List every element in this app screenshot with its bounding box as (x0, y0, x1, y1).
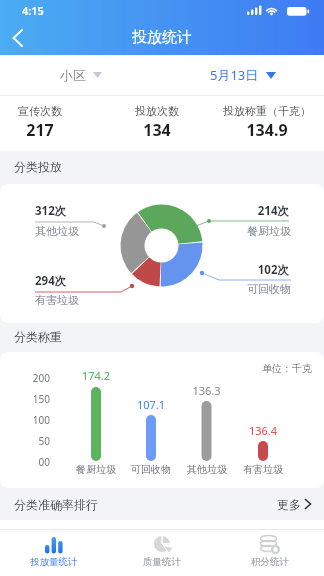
staticText: 投放称重（千克） (210, 104, 324, 118)
staticText: 投放量统计 (30, 556, 78, 568)
staticText: 投放统计 (0, 28, 324, 47)
staticText: 134.9 (210, 119, 324, 141)
staticText: 134 (117, 119, 197, 141)
staticText: 其他垃圾 (35, 224, 79, 238)
staticText: 5月13日 (210, 66, 259, 84)
staticText: 102次 (209, 262, 289, 278)
staticText: 294次 (35, 273, 67, 289)
staticText: 00 (18, 455, 50, 469)
staticText: 分类准确率排行 (14, 497, 98, 512)
staticText: 餐厨垃圾 (211, 224, 291, 238)
button[interactable] (4, 22, 42, 55)
staticText: 有害垃圾 (35, 293, 79, 307)
staticText: 有害垃圾 (233, 463, 293, 476)
button[interactable]: 积分统计 (216, 530, 324, 576)
button[interactable]: 5月13日 (162, 55, 324, 95)
staticText: 50 (18, 434, 50, 448)
button[interactable]: 质量统计 (108, 530, 216, 576)
staticText: 投放次数 (117, 104, 197, 118)
button[interactable]: 小区 (0, 55, 162, 95)
staticText: 174.2 (66, 368, 126, 383)
button[interactable]: 分类准确率排行 (0, 488, 324, 520)
staticText: 餐厨垃圾 (66, 463, 126, 476)
staticText: 分类称重 (14, 329, 62, 344)
staticText: 4:15 (22, 3, 44, 18)
staticText: 可回收物 (211, 282, 291, 296)
staticText: 更多 (277, 497, 301, 512)
staticText: 150 (18, 392, 50, 406)
staticText: 107.1 (121, 397, 181, 412)
staticText: 分类投放 (14, 159, 62, 174)
staticText: 小区 (60, 67, 86, 83)
staticText: 质量统计 (143, 556, 181, 568)
staticText: 136.4 (233, 423, 293, 438)
staticText: 136.3 (176, 383, 237, 398)
staticText: 100 (18, 413, 50, 427)
staticText: 其他垃圾 (177, 463, 237, 476)
staticText: 214次 (209, 203, 289, 219)
staticText: 312次 (35, 203, 67, 219)
staticText: 217 (0, 119, 80, 141)
staticText: 积分统计 (251, 556, 289, 568)
staticText: 单位：千克 (0, 362, 312, 375)
staticText: 可回收物 (121, 463, 181, 476)
staticText: 200 (18, 371, 50, 385)
button[interactable]: 投放量统计 (0, 530, 108, 576)
staticText: 宣传次数 (0, 104, 80, 118)
